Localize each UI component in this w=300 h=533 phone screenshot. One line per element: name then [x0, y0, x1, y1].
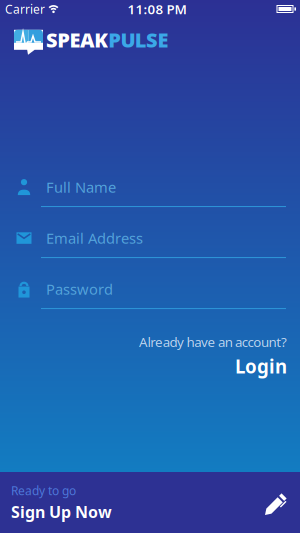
staticText: Ready to go — [11, 483, 76, 499]
staticText: Login — [235, 354, 287, 379]
staticText: Already have an account? — [139, 333, 287, 351]
button[interactable]: Full Name — [0, 174, 300, 207]
staticText: Carrier — [5, 1, 45, 17]
staticText: 11:08 PM — [127, 0, 186, 18]
button[interactable]: Login — [235, 354, 287, 379]
staticText: PULSE — [108, 26, 168, 53]
staticText: Password — [46, 279, 113, 299]
staticText: Email Address — [46, 228, 143, 248]
button[interactable]: Ready to go — [0, 472, 300, 533]
staticText: SPEAK — [46, 26, 108, 53]
button[interactable]: Password — [0, 276, 300, 309]
staticText: Sign Up Now — [11, 501, 112, 522]
button[interactable]: Email Address — [0, 225, 300, 258]
staticText: Full Name — [46, 177, 116, 197]
